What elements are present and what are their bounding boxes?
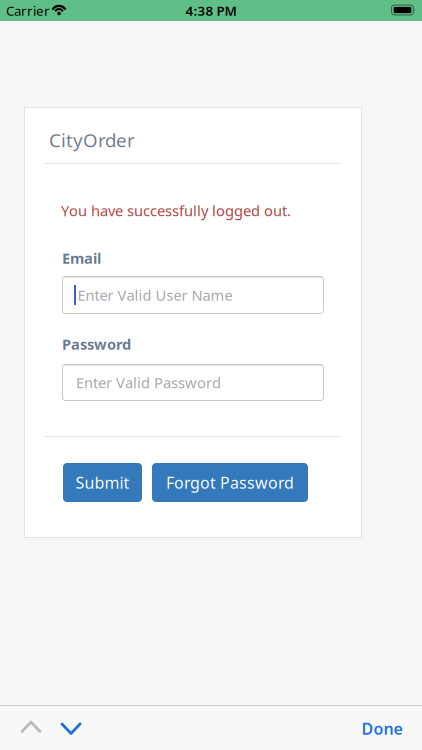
staticText: Submit	[75, 472, 129, 493]
staticText: Email	[62, 248, 101, 268]
button[interactable]: Submit	[63, 463, 142, 502]
staticText: 4:38 PM	[185, 2, 236, 19]
button[interactable]: Previous field	[20, 719, 42, 735]
staticText: Done	[361, 718, 402, 739]
button[interactable]: Forgot Password	[152, 463, 308, 502]
staticText: Password	[62, 334, 131, 354]
button[interactable]: Done	[361, 718, 402, 739]
button[interactable]: Next field	[60, 720, 82, 736]
button[interactable]: Enter Valid User Name	[62, 276, 324, 314]
staticText: Forgot Password	[166, 472, 294, 493]
staticText: Enter Valid User Name	[77, 285, 232, 305]
staticText: CityOrder	[49, 128, 135, 152]
staticText: Carrier	[6, 2, 50, 19]
button[interactable]: Enter Valid Password	[62, 364, 324, 401]
staticText: You have successfully logged out.	[61, 201, 291, 220]
staticText: Enter Valid Password	[76, 373, 221, 392]
